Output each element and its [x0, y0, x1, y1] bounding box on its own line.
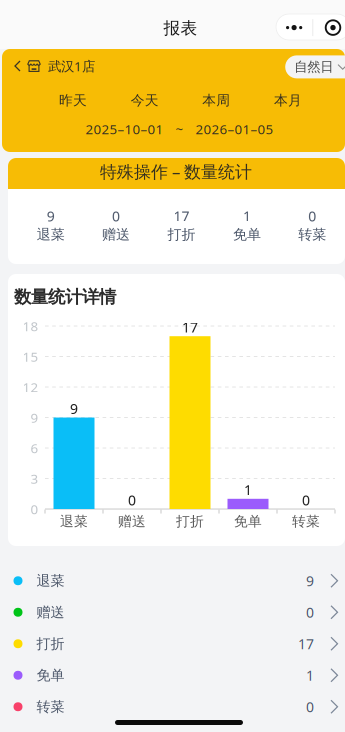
- staticText: 0: [112, 206, 120, 226]
- staticText: 赠送: [102, 226, 130, 243]
- staticText: 转菜: [298, 226, 326, 243]
- staticText: 退菜: [37, 226, 65, 243]
- staticText: 9: [70, 399, 78, 418]
- staticText: 打折: [36, 635, 64, 652]
- button[interactable]: 退菜: [0, 565, 345, 596]
- button[interactable]: 打折: [0, 628, 345, 659]
- staticText: 报表: [163, 18, 197, 39]
- staticText: 赠送: [36, 603, 64, 621]
- button[interactable]: 今天: [113, 85, 177, 116]
- staticText: 特殊操作 – 数量统计: [100, 160, 252, 183]
- staticText: 0: [306, 697, 314, 716]
- button[interactable]: 赠送: [0, 596, 345, 628]
- staticText: 17: [182, 318, 198, 337]
- staticText: 18: [22, 317, 38, 335]
- staticText: 打折: [167, 226, 195, 243]
- staticText: 1: [306, 666, 314, 685]
- staticText: 自然日: [294, 58, 333, 75]
- button[interactable]: 自然日: [285, 55, 345, 78]
- staticText: 15: [22, 347, 38, 366]
- staticText: 武汉1店: [48, 57, 95, 75]
- staticText: 3: [30, 469, 38, 488]
- button[interactable]: 本周: [184, 85, 248, 116]
- button[interactable]: 转菜: [0, 691, 345, 722]
- staticText: 退菜: [60, 513, 88, 530]
- staticText: 转菜: [36, 698, 64, 715]
- staticText: 数量统计详情: [14, 286, 116, 308]
- staticText: 1: [243, 206, 251, 226]
- staticText: 12: [22, 378, 38, 396]
- staticText: 免单: [233, 226, 261, 243]
- staticText: 0: [308, 206, 316, 226]
- staticText: 赠送: [118, 513, 146, 530]
- staticText: 昨天: [59, 92, 87, 109]
- staticText: 2025–10–01: [85, 120, 163, 138]
- staticText: 0: [128, 490, 136, 510]
- staticText: 0: [30, 500, 38, 518]
- staticText: 9: [47, 206, 55, 226]
- staticText: 0: [306, 603, 314, 622]
- button[interactable]: 免单: [0, 659, 345, 691]
- staticText: 6: [30, 439, 38, 457]
- staticText: 转菜: [292, 513, 320, 530]
- staticText: 退菜: [36, 572, 64, 589]
- staticText: 1: [244, 480, 252, 499]
- staticText: 打折: [176, 513, 204, 530]
- staticText: 本月: [274, 92, 302, 109]
- staticText: 17: [173, 206, 189, 226]
- staticText: 今天: [131, 92, 159, 109]
- staticText: 免单: [36, 666, 64, 684]
- staticText: 9: [30, 408, 38, 427]
- button[interactable]: 昨天: [41, 85, 105, 116]
- staticText: ~: [175, 120, 183, 138]
- staticText: 本周: [202, 92, 230, 109]
- staticText: 17: [298, 634, 314, 653]
- staticText: 0: [302, 490, 310, 510]
- staticText: 免单: [234, 513, 262, 530]
- button[interactable]: 本月: [256, 85, 320, 116]
- staticText: 2026–01–05: [195, 120, 273, 138]
- staticText: 9: [306, 571, 314, 590]
- button[interactable]: Back to store list: [4, 49, 154, 83]
- button[interactable]: More options: [276, 14, 345, 40]
